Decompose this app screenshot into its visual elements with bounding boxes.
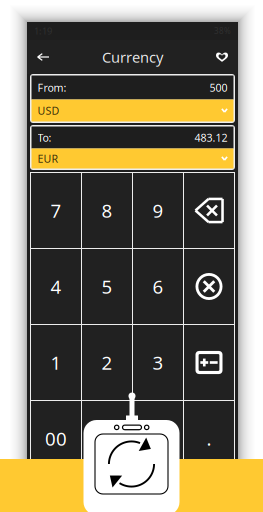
staticText: . xyxy=(206,426,211,451)
button[interactable]: Favorite xyxy=(210,45,234,69)
button[interactable]: 1 xyxy=(31,325,81,400)
button[interactable]: Plus minus xyxy=(184,325,234,400)
button[interactable]: Clear xyxy=(184,249,234,324)
button[interactable]: 9 xyxy=(133,173,183,248)
staticText: EUR xyxy=(37,151,58,166)
staticText: 9 xyxy=(152,198,163,223)
button[interactable]: Decimal point xyxy=(184,401,234,476)
button[interactable]: . xyxy=(133,401,183,476)
staticText: 38% xyxy=(214,26,231,36)
button[interactable]: 3 xyxy=(133,325,183,400)
button[interactable]: 6 xyxy=(133,249,183,324)
staticText: 483.12 xyxy=(194,130,227,145)
button[interactable]: 2 xyxy=(82,325,132,400)
staticText: To: xyxy=(37,130,51,145)
staticText: 8 xyxy=(101,198,112,223)
staticText: 00 xyxy=(45,426,67,451)
button[interactable]: 0 xyxy=(82,401,132,476)
button[interactable]: 5 xyxy=(82,249,132,324)
button[interactable]: 4 xyxy=(31,249,81,324)
staticText: 5 xyxy=(101,274,112,299)
staticText: 500 xyxy=(209,80,227,95)
button[interactable]: 00 xyxy=(31,401,81,476)
staticText: 1 xyxy=(50,350,61,375)
staticText: USD xyxy=(37,103,59,118)
staticText: 2 xyxy=(101,350,112,375)
button[interactable]: Back xyxy=(31,45,55,69)
staticText: Currency xyxy=(102,47,163,67)
button[interactable]: Backspace xyxy=(184,173,234,248)
staticText: 1:19 xyxy=(34,25,52,37)
staticText: 7 xyxy=(50,198,61,223)
button[interactable]: 8 xyxy=(82,173,132,248)
staticText: 4 xyxy=(50,274,61,299)
staticText: From: xyxy=(37,80,66,95)
staticText: 0 xyxy=(101,426,112,451)
staticText: 6 xyxy=(152,274,163,299)
button[interactable]: 7 xyxy=(31,173,81,248)
staticText: 3 xyxy=(152,350,163,375)
staticText: . xyxy=(155,426,160,451)
